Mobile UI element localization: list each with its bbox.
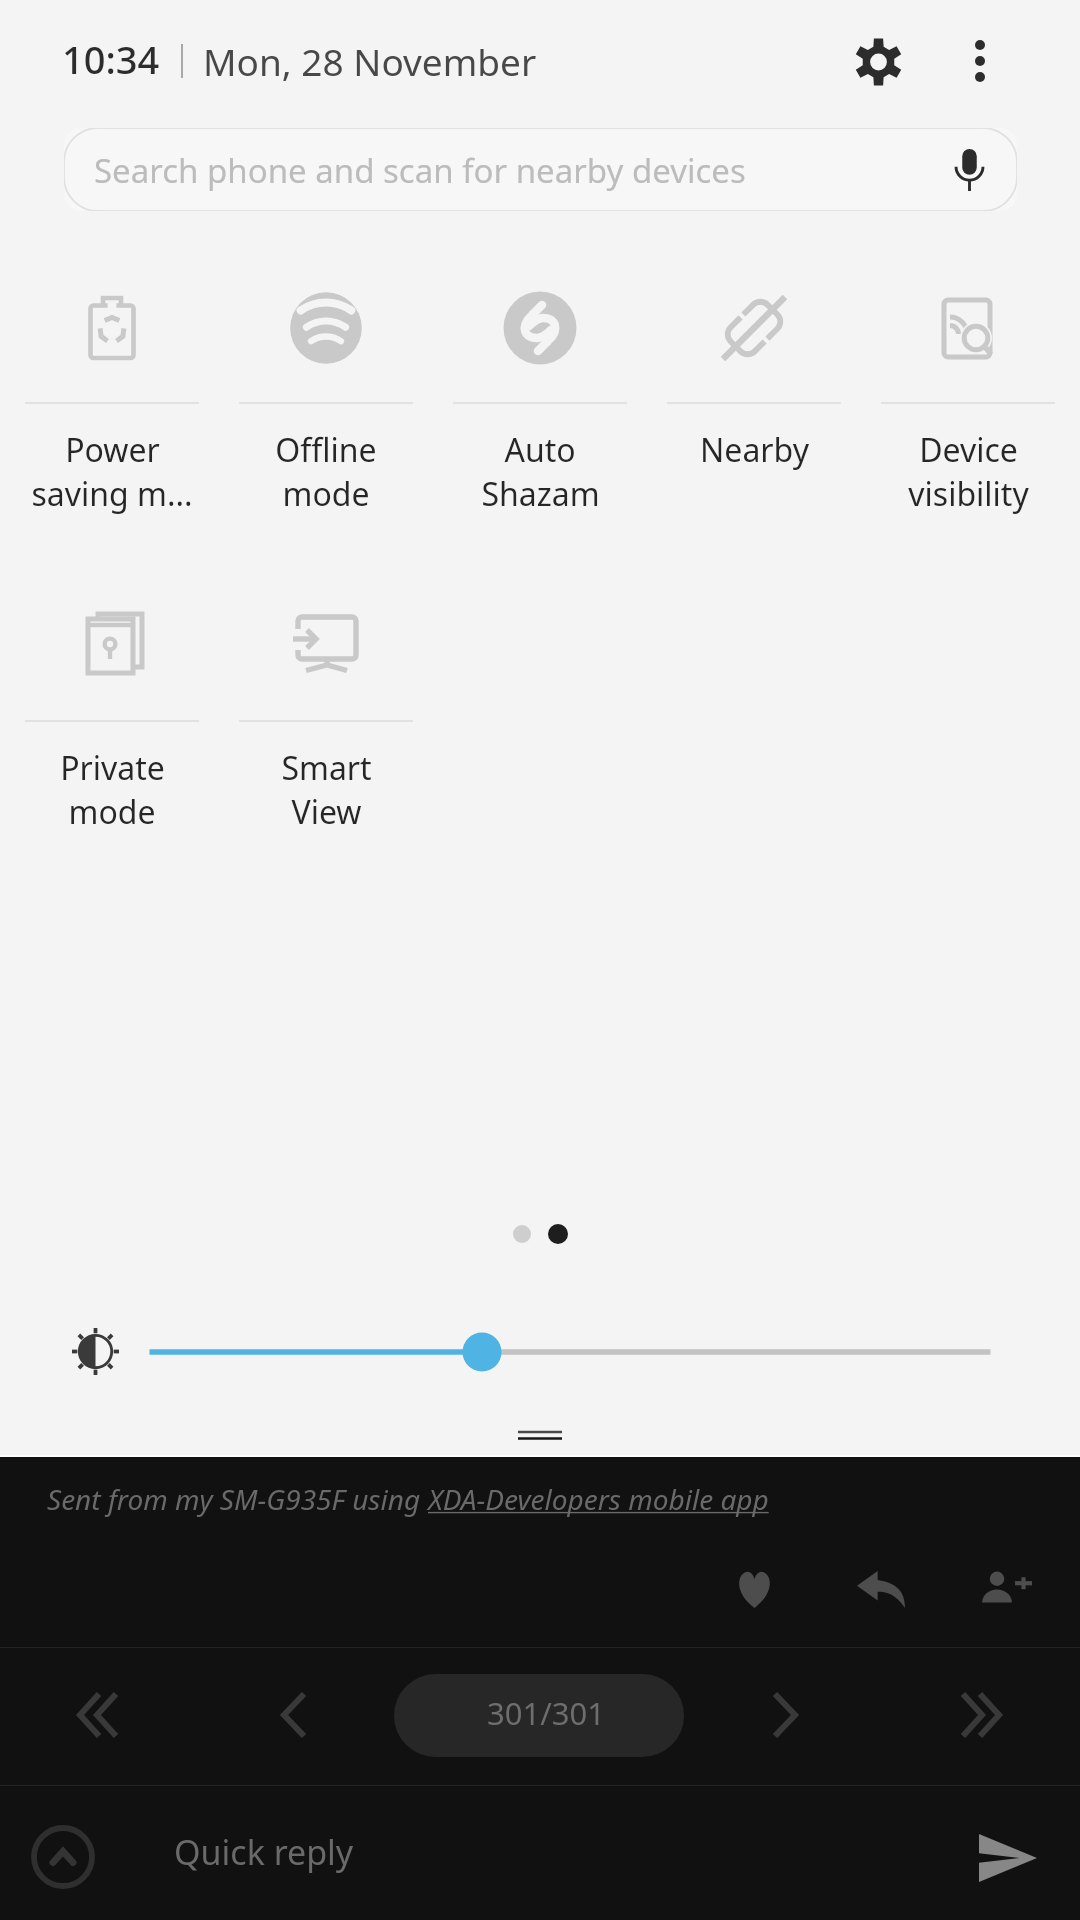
button[interactable]: Last page: [948, 1682, 1014, 1748]
staticText: Offline: [275, 428, 377, 472]
staticText: Power: [65, 428, 160, 472]
button[interactable]: More options: [947, 28, 1013, 94]
button[interactable]: Voice search: [939, 140, 999, 200]
staticText: saving m...: [31, 472, 193, 516]
button[interactable]: Settings: [840, 24, 916, 100]
staticText: Smart: [281, 746, 372, 790]
button[interactable]: First page: [65, 1682, 131, 1748]
staticText: Sent from my SM-G935F using: [47, 1480, 428, 1518]
button[interactable]: Offline: [222, 288, 430, 528]
button[interactable]: Smart: [222, 606, 430, 846]
button[interactable]: Add friend: [973, 1557, 1038, 1622]
staticText: Quick reply: [174, 1829, 354, 1875]
staticText: XDA-Developers mobile app: [428, 1480, 769, 1518]
button[interactable]: Device: [864, 288, 1072, 528]
button[interactable]: Reply: [848, 1557, 913, 1622]
staticText: Search phone and scan for nearby devices: [94, 148, 746, 193]
staticText: mode: [68, 790, 156, 834]
staticText: Mon, 28 November: [203, 36, 537, 86]
staticText: 301/301: [487, 1692, 605, 1734]
button[interactable]: Expand: [28, 1822, 98, 1892]
button[interactable]: Search phone and scan for nearby devices: [64, 128, 1017, 211]
button[interactable]: Auto: [436, 288, 644, 528]
staticText: Shazam: [481, 472, 600, 516]
staticText: 10:34: [62, 33, 160, 85]
staticText: Private: [60, 746, 165, 790]
staticText: View: [291, 790, 362, 834]
button[interactable]: Previous page: [261, 1682, 327, 1748]
button[interactable]: Send: [972, 1822, 1044, 1894]
button[interactable]: Like: [722, 1557, 787, 1622]
button[interactable]: Next page: [752, 1682, 818, 1748]
button[interactable]: Nearby: [650, 288, 858, 528]
button[interactable]: 301/301: [394, 1674, 684, 1757]
button[interactable]: Power: [8, 288, 216, 528]
staticText: Auto: [504, 428, 576, 472]
staticText: Nearby: [700, 428, 809, 472]
staticText: visibility: [908, 472, 1029, 516]
staticText: mode: [282, 472, 370, 516]
staticText: Device: [919, 428, 1018, 472]
button[interactable]: Private: [8, 606, 216, 846]
